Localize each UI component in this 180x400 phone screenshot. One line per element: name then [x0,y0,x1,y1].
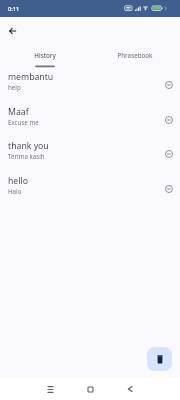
staticText: Phrasebook [117,51,153,59]
button[interactable]: Clear history [147,347,172,371]
staticText: thank you [8,140,49,152]
button[interactable]: Phrasebook [90,43,180,67]
button[interactable]: Recent apps [41,380,59,398]
button[interactable]: Remove [161,146,176,161]
button[interactable]: Remove [161,77,176,92]
staticText: Excuse me [8,118,39,126]
button[interactable]: Remove [161,181,176,196]
button[interactable]: hello [0,171,180,206]
staticText: 0:11 [8,5,20,13]
staticText: help [8,83,21,91]
button[interactable]: Back [121,380,139,398]
button[interactable]: Home [81,380,99,398]
button[interactable]: membantu [0,67,180,102]
staticText: hello [8,175,29,187]
staticText: Terima kasih [8,152,45,160]
button[interactable]: Remove [161,112,176,127]
button[interactable]: Back [3,21,22,40]
staticText: Maaf [8,106,29,118]
staticText: Halo [8,187,22,195]
staticText: membantu [8,71,54,83]
button[interactable]: History [0,43,90,67]
button[interactable]: thank you [0,136,180,171]
button[interactable]: Maaf [0,102,180,137]
staticText: History [34,51,56,59]
